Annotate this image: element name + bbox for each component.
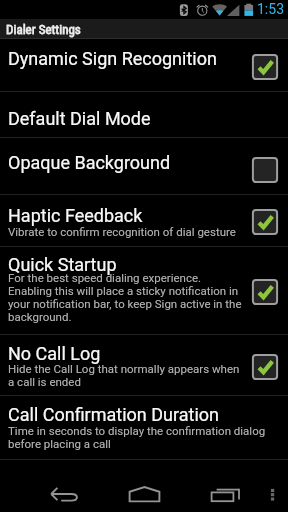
staticText: Call Confirmation Duration [8,404,219,425]
staticText: For the best speed dialing experience. E… [8,272,242,324]
staticText: Hide the Call Log that normally appears … [8,363,248,389]
button[interactable]: Quick Startup [0,247,288,335]
staticText: Haptic Feedback [8,205,143,226]
button[interactable]: More options [256,460,288,512]
staticText: Dynamic Sign Recognition [8,48,217,69]
staticText: Quick Startup [8,254,117,275]
staticText: 1:53 [257,1,284,17]
button[interactable]: Opaque Background [0,138,288,195]
staticText: No Call Log [8,343,101,364]
button[interactable]: Haptic Feedback [0,195,288,247]
staticText: Time in seconds to display the confirmat… [8,425,280,451]
button[interactable]: Default Dial Mode [0,92,288,138]
button[interactable]: Recent apps [184,460,256,512]
staticText: Opaque Background [8,152,171,173]
button[interactable]: Dynamic Sign Recognition [0,39,288,92]
button[interactable]: No Call Log [0,335,288,396]
button[interactable]: Call Confirmation Duration [0,396,288,460]
staticText: Default Dial Mode [8,108,151,129]
button[interactable]: Home [106,460,184,512]
staticText: Dialer Settings [6,22,81,37]
staticText: Vibrate to confirm recognition of dial g… [8,226,252,239]
button[interactable]: Back [0,460,106,512]
